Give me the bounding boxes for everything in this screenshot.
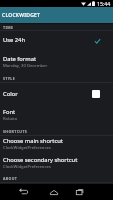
staticText: ClockWidgetPreferences bbox=[3, 164, 51, 170]
button[interactable]: Color bbox=[0, 87, 113, 100]
staticText: SHORTCUTS bbox=[3, 129, 28, 134]
staticText: Color bbox=[3, 90, 18, 98]
button[interactable]: Recents bbox=[71, 184, 88, 200]
button[interactable]: Font bbox=[0, 106, 113, 123]
button[interactable]: Use 24h bbox=[0, 33, 113, 46]
staticText: Roboto bbox=[3, 116, 18, 122]
staticText: 15:44 bbox=[97, 0, 111, 7]
staticText: Monday, 30 December bbox=[3, 63, 48, 69]
button[interactable]: Back bbox=[15, 184, 32, 200]
staticText: STYLE bbox=[3, 76, 16, 81]
button[interactable]: Home bbox=[45, 184, 62, 200]
button[interactable]: CLOCKWIDGET bbox=[0, 7, 113, 23]
staticText: Choose secondary shortcut bbox=[3, 156, 78, 164]
staticText: Use 24h bbox=[3, 36, 26, 44]
staticText: CLOCKWIDGET bbox=[2, 12, 41, 19]
staticText: TIME bbox=[3, 25, 14, 30]
staticText: Choose main shortcut bbox=[3, 137, 63, 145]
staticText: Font bbox=[3, 108, 16, 116]
staticText: ClockWidgetPreferences bbox=[3, 145, 51, 151]
staticText: Date format bbox=[3, 55, 37, 63]
button[interactable]: Date format bbox=[0, 53, 113, 70]
button[interactable]: Choose main shortcut bbox=[0, 135, 113, 152]
button[interactable]: Choose secondary shortcut bbox=[0, 154, 113, 171]
staticText: ABOUT bbox=[3, 176, 18, 181]
